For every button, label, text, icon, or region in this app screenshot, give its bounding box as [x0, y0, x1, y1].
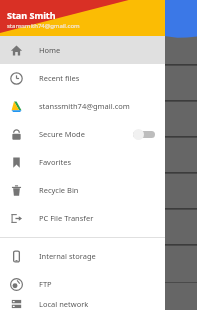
button[interactable]: Home — [0, 36, 165, 64]
staticText: Internal storage — [39, 251, 96, 261]
staticText: Favorites — [39, 157, 72, 167]
button[interactable]: Secure Mode — [0, 120, 165, 148]
staticText: FTP — [39, 279, 52, 289]
staticText: Stan Smith — [7, 9, 56, 21]
button[interactable]: stanssmith74@gmail.com — [0, 92, 165, 120]
button[interactable]: Internal storage — [0, 242, 165, 270]
staticText: Local network — [39, 299, 89, 309]
button[interactable]: FTP — [0, 270, 165, 298]
staticText: Home — [39, 45, 61, 55]
staticText: PC File Transfer — [39, 213, 94, 223]
staticText: stanssmith74@gmail.com — [39, 101, 130, 111]
button[interactable]: Favorites — [0, 148, 165, 176]
staticText: Recycle Bin — [39, 185, 79, 195]
button[interactable]: Recent files — [0, 64, 165, 92]
button[interactable]: Recycle Bin — [0, 176, 165, 204]
staticText: Secure Mode — [39, 129, 85, 139]
staticText: stanssmith74@gmail.com — [7, 22, 80, 30]
button[interactable]: Local network — [0, 298, 165, 310]
staticText: Recent files — [39, 73, 80, 83]
button[interactable]: PC File Transfer — [0, 204, 165, 232]
